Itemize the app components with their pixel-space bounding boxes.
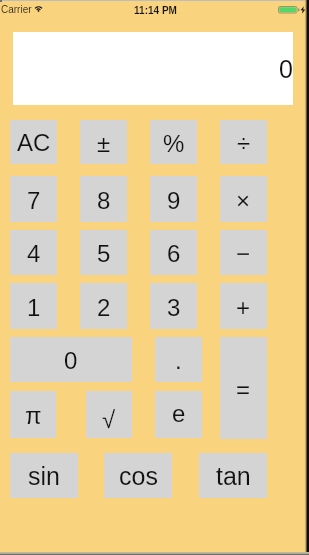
- button[interactable]: .: [155, 337, 202, 382]
- staticText: 0: [64, 347, 78, 374]
- staticText: tan: [216, 462, 251, 490]
- button[interactable]: AC: [10, 120, 57, 164]
- button[interactable]: 8: [80, 176, 127, 222]
- staticText: −: [236, 240, 251, 267]
- staticText: ÷: [237, 130, 251, 157]
- button[interactable]: 9: [150, 176, 197, 222]
- staticText: Carrier: [1, 4, 32, 15]
- staticText: +: [236, 294, 251, 321]
- button[interactable]: ±: [80, 120, 127, 164]
- button[interactable]: sin: [10, 453, 78, 498]
- staticText: 8: [97, 187, 111, 214]
- staticText: 2: [97, 294, 111, 321]
- staticText: 5: [97, 240, 111, 267]
- button[interactable]: 7: [10, 176, 57, 222]
- button[interactable]: +: [220, 283, 267, 329]
- staticText: 3: [167, 294, 181, 321]
- staticText: 7: [27, 187, 41, 214]
- button[interactable]: 3: [150, 283, 197, 329]
- staticText: 0: [279, 55, 293, 83]
- staticText: 4: [27, 240, 41, 267]
- button[interactable]: ÷: [220, 120, 267, 164]
- button[interactable]: 1: [10, 283, 57, 329]
- staticText: ×: [236, 187, 251, 214]
- button[interactable]: %: [150, 120, 197, 164]
- staticText: ±: [97, 130, 111, 157]
- staticText: √: [102, 406, 116, 433]
- button[interactable]: 6: [150, 230, 197, 275]
- staticText: .: [175, 347, 182, 374]
- staticText: e: [172, 400, 186, 427]
- button[interactable]: 5: [80, 230, 127, 275]
- staticText: AC: [17, 129, 51, 156]
- button[interactable]: tan: [199, 453, 267, 498]
- button[interactable]: 4: [10, 230, 57, 275]
- staticText: π: [25, 402, 42, 429]
- button[interactable]: ×: [220, 176, 267, 222]
- button[interactable]: 0: [10, 337, 132, 382]
- button[interactable]: =: [220, 337, 267, 439]
- button[interactable]: √: [86, 391, 132, 438]
- staticText: =: [236, 376, 251, 403]
- staticText: 6: [167, 240, 181, 267]
- button[interactable]: 2: [80, 283, 127, 329]
- button[interactable]: e: [155, 391, 202, 438]
- button[interactable]: −: [220, 230, 267, 275]
- button[interactable]: cos: [104, 453, 172, 498]
- staticText: sin: [28, 462, 60, 490]
- staticText: 11:14 PM: [1, 5, 309, 16]
- button[interactable]: π: [10, 391, 56, 438]
- staticText: 1: [27, 294, 41, 321]
- staticText: %: [163, 130, 185, 157]
- staticText: cos: [119, 462, 158, 490]
- staticText: 9: [167, 187, 181, 214]
